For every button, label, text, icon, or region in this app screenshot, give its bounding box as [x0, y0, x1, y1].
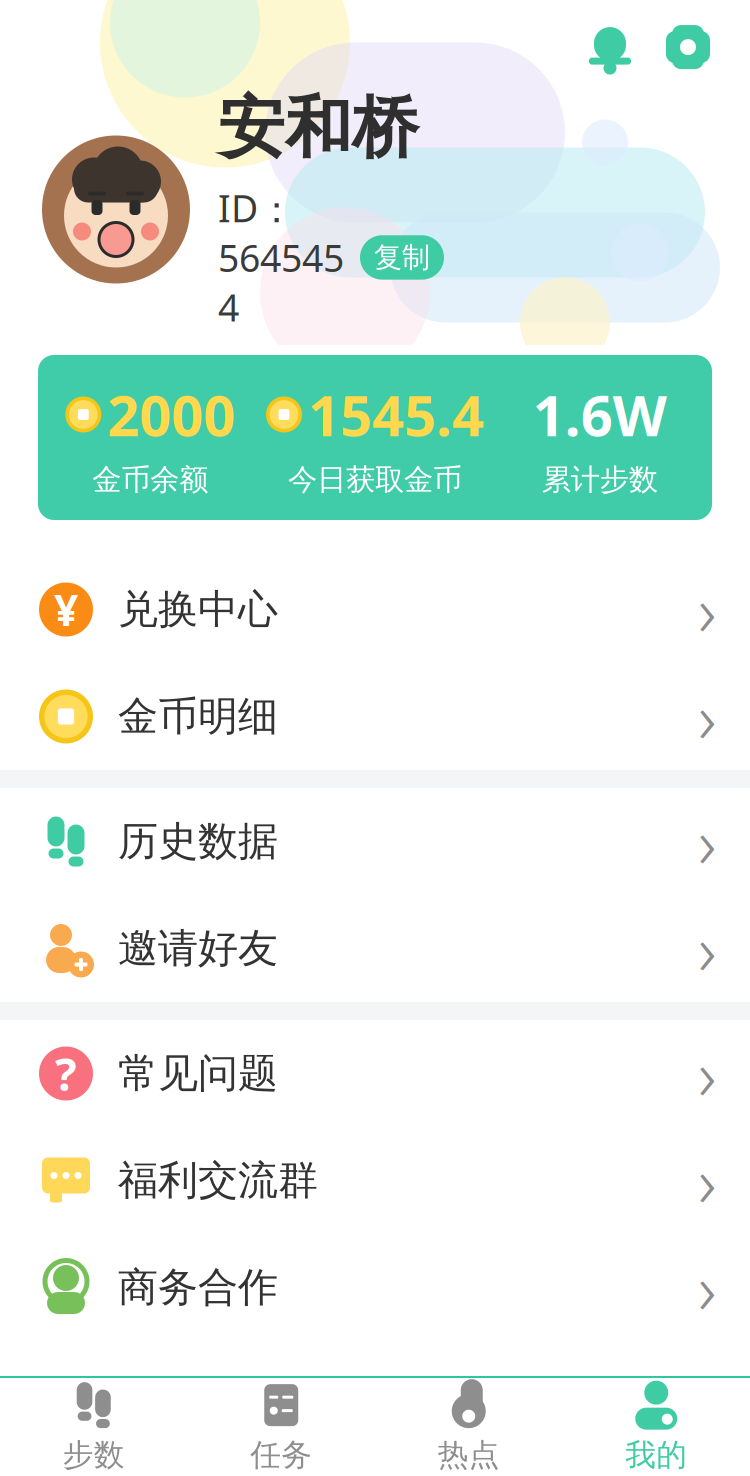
button[interactable]: 步数	[0, 1378, 187, 1476]
button[interactable]: 头像	[42, 135, 190, 283]
staticText: 1545.4	[308, 377, 484, 452]
button[interactable]: 热点	[375, 1378, 562, 1476]
staticText: ›	[698, 563, 716, 656]
staticText: 任务	[250, 1436, 312, 1474]
staticText: 今日获取金币	[288, 462, 462, 498]
button[interactable]: 金币明细	[0, 663, 750, 770]
staticText: 累计步数	[542, 462, 658, 498]
button[interactable]: 商务合作	[0, 1234, 750, 1341]
button[interactable]: ?	[0, 1020, 750, 1127]
staticText: 安和桥	[218, 87, 419, 169]
button[interactable]: 我的	[562, 1378, 750, 1476]
button[interactable]: 复制	[360, 235, 444, 280]
staticText: 邀请好友	[118, 924, 278, 973]
staticText: 历史数据	[118, 817, 278, 866]
staticText: 1.6W	[533, 377, 667, 452]
staticText: 兑换中心	[118, 585, 278, 634]
staticText: 复制	[374, 240, 430, 275]
staticText: ›	[698, 1241, 716, 1334]
button[interactable]: 历史数据	[0, 788, 750, 895]
staticText: ID：5645454	[218, 183, 344, 332]
button[interactable]: ¥	[0, 556, 750, 663]
staticText: ?	[55, 1043, 77, 1104]
staticText: ›	[698, 670, 716, 763]
button[interactable]: 福利交流群	[0, 1127, 750, 1234]
staticText: 常见问题	[118, 1049, 278, 1098]
staticText: 我的	[625, 1436, 687, 1474]
staticText: 热点	[438, 1436, 500, 1474]
staticText: ›	[698, 1134, 716, 1227]
button[interactable]: 任务	[187, 1378, 375, 1476]
staticText: ›	[698, 1027, 716, 1120]
button[interactable]: 邀请好友	[0, 895, 750, 1002]
staticText: 福利交流群	[118, 1156, 318, 1205]
staticText: ¥	[54, 581, 78, 638]
staticText: 商务合作	[118, 1263, 278, 1312]
button[interactable]: 通知	[578, 15, 642, 79]
button[interactable]: 设置	[656, 15, 720, 79]
staticText: ›	[698, 902, 716, 995]
staticText: 金币余额	[92, 462, 208, 498]
staticText: ›	[698, 795, 716, 888]
staticText: 2000	[107, 377, 235, 452]
staticText: 步数	[63, 1436, 125, 1474]
staticText: 金币明细	[118, 692, 278, 741]
